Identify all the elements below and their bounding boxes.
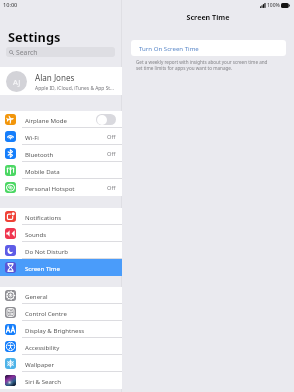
staticText: Alan Jones [35, 72, 75, 83]
staticText: Do Not Disturb [25, 247, 68, 255]
staticText: Airplane Mode [25, 116, 67, 124]
button[interactable]: Screen Time [0, 259, 122, 276]
staticText: 10:00 [3, 1, 18, 9]
staticText: Turn On Screen Time [139, 44, 199, 52]
button[interactable]: General [0, 287, 122, 304]
staticText: Personal Hotspot [25, 184, 75, 192]
staticText: Settings [8, 28, 61, 45]
staticText: Bluetooth [25, 150, 54, 158]
button[interactable]: Bluetooth [0, 145, 122, 162]
button[interactable]: Wallpaper [0, 355, 122, 372]
staticText: Notifications [25, 213, 62, 221]
staticText: Wallpaper [25, 360, 54, 368]
button[interactable]: Airplane Mode [0, 111, 122, 128]
staticText: Apple ID, iCloud, iTunes & App St… [35, 85, 114, 92]
button[interactable]: Airplane Mode toggle [96, 114, 116, 125]
staticText: Off [107, 184, 116, 192]
button[interactable]: Turn On Screen Time [131, 40, 286, 56]
button[interactable]: Notifications [0, 208, 122, 225]
button[interactable]: Accessibility [0, 338, 122, 355]
button[interactable]: Display & Brightness [0, 321, 122, 338]
staticText: Search [16, 48, 38, 57]
staticText: Screen Time [25, 264, 60, 272]
staticText: AJ [13, 77, 21, 87]
button[interactable]: Do Not Disturb [0, 242, 122, 259]
staticText: General [25, 292, 48, 300]
button[interactable]: AJ [0, 67, 122, 95]
staticText: Off [107, 133, 116, 141]
staticText: Accessibility [25, 343, 60, 351]
staticText: Display & Brightness [25, 326, 85, 334]
button[interactable]: Search [6, 47, 115, 57]
staticText: Screen Time [122, 12, 294, 22]
staticText: Get a weekly report with insights about … [136, 59, 268, 71]
staticText: Sounds [25, 230, 47, 238]
staticText: Wi-Fi [25, 133, 39, 141]
button[interactable]: Control Centre [0, 304, 122, 321]
button[interactable]: Personal Hotspot [0, 179, 122, 196]
staticText: Mobile Data [25, 167, 60, 175]
button[interactable]: Siri & Search [0, 372, 122, 389]
button[interactable]: Mobile Data [0, 162, 122, 179]
staticText: 100% [267, 2, 280, 9]
button[interactable]: Wi-Fi [0, 128, 122, 145]
staticText: Siri & Search [25, 377, 61, 385]
staticText: Off [107, 150, 116, 158]
staticText: Control Centre [25, 309, 67, 317]
button[interactable]: Sounds [0, 225, 122, 242]
